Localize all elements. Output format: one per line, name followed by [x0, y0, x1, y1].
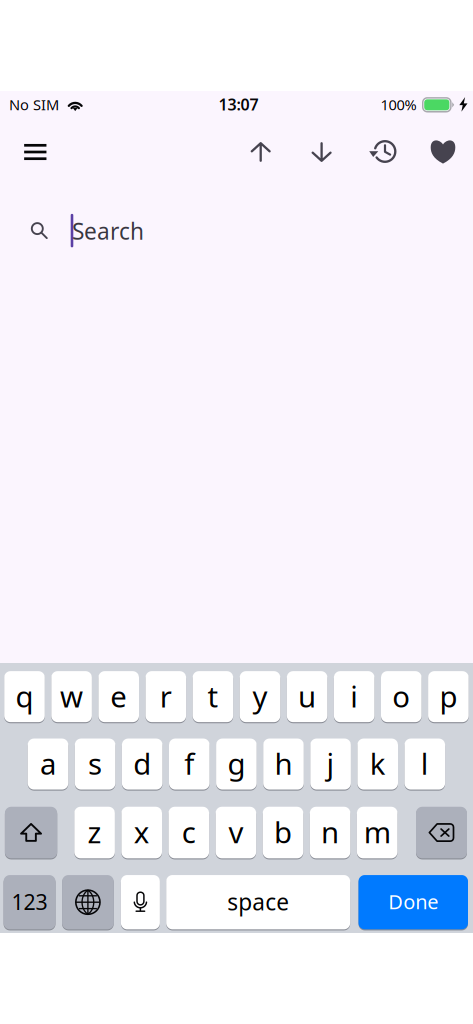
staticText: g — [227, 744, 245, 783]
button[interactable]: y — [240, 671, 280, 723]
button[interactable]: e — [98, 671, 139, 723]
staticText: n — [321, 812, 339, 851]
button[interactable]: h — [263, 738, 304, 790]
staticText: r — [160, 677, 172, 716]
button[interactable]: Delete — [416, 806, 467, 859]
staticText: c — [182, 812, 196, 851]
button[interactable]: i — [334, 671, 374, 723]
button[interactable]: s — [75, 738, 115, 790]
staticText: y — [252, 677, 267, 716]
staticText: k — [370, 744, 386, 783]
staticText: t — [207, 677, 218, 716]
button[interactable]: j — [310, 738, 351, 790]
staticText: s — [88, 744, 102, 783]
staticText: b — [274, 812, 292, 851]
button[interactable]: Favourites — [420, 130, 466, 174]
staticText: f — [184, 744, 194, 783]
button[interactable]: Dictate — [121, 874, 160, 930]
staticText: p — [439, 677, 457, 716]
button[interactable]: Scroll up — [238, 130, 284, 174]
staticText: v — [228, 812, 243, 851]
button[interactable]: f — [169, 738, 210, 790]
staticText: h — [274, 744, 292, 783]
staticText: l — [421, 744, 429, 783]
staticText: No SIM — [9, 95, 59, 114]
button[interactable]: t — [193, 671, 233, 723]
button[interactable]: a — [28, 738, 68, 790]
button[interactable]: Shift — [5, 806, 57, 859]
staticText: 100% — [381, 95, 417, 114]
button[interactable]: d — [122, 738, 162, 790]
button[interactable]: Search — [0, 202, 473, 260]
button[interactable]: v — [216, 806, 256, 859]
button[interactable]: x — [121, 806, 162, 859]
button[interactable]: r — [145, 671, 186, 723]
staticText: u — [298, 677, 316, 716]
staticText: q — [15, 677, 33, 716]
button[interactable]: c — [168, 806, 209, 859]
button[interactable]: p — [428, 671, 469, 723]
button[interactable]: l — [404, 738, 445, 790]
staticText: a — [40, 744, 56, 783]
staticText: 13:07 — [218, 94, 258, 115]
button[interactable]: 123 — [4, 874, 55, 930]
staticText: e — [110, 677, 127, 716]
button[interactable]: m — [357, 806, 397, 859]
button[interactable]: Next keyboard — [62, 874, 114, 930]
button[interactable]: Done — [358, 874, 468, 930]
button[interactable]: k — [357, 738, 398, 790]
staticText: j — [327, 744, 335, 783]
button[interactable]: Scroll down — [299, 130, 345, 174]
staticText: 123 — [11, 887, 47, 916]
staticText: z — [88, 812, 102, 851]
staticText: w — [60, 677, 83, 716]
button[interactable]: n — [310, 806, 350, 859]
button[interactable]: w — [51, 671, 92, 723]
button[interactable]: u — [287, 671, 327, 723]
button[interactable]: b — [263, 806, 303, 859]
button[interactable]: g — [216, 738, 257, 790]
staticText: Done — [388, 888, 438, 915]
staticText: space — [227, 886, 289, 917]
button[interactable]: o — [381, 671, 422, 723]
button[interactable]: z — [74, 806, 115, 859]
staticText: Search — [72, 216, 144, 246]
button[interactable]: Menu — [12, 130, 58, 174]
staticText: d — [133, 744, 151, 783]
button[interactable]: space — [166, 874, 350, 930]
staticText: o — [392, 677, 410, 716]
button[interactable]: q — [4, 671, 45, 723]
staticText: m — [364, 812, 391, 851]
staticText: x — [134, 812, 150, 851]
button[interactable]: History — [359, 130, 405, 174]
staticText: i — [350, 677, 358, 716]
